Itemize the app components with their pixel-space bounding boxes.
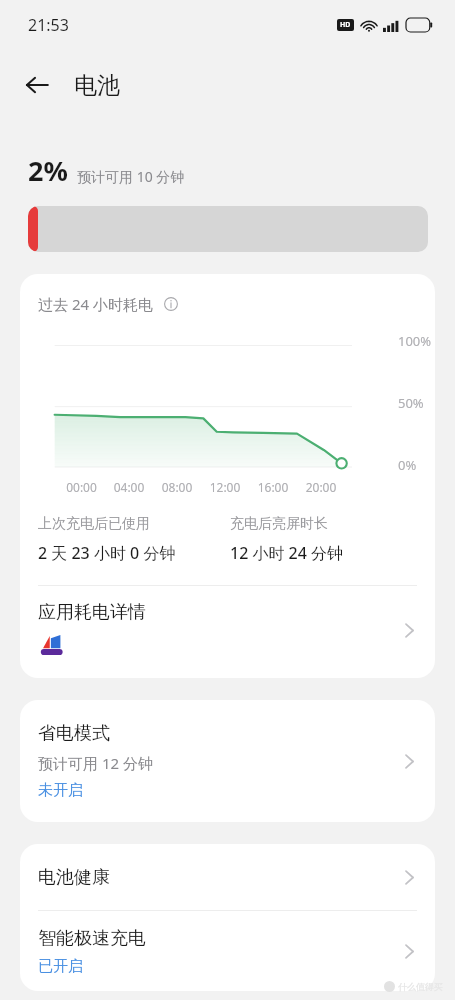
staticText: 100% [398,332,432,350]
button[interactable]: Info [160,293,182,315]
staticText: 0% [398,456,417,474]
staticText: 应用耗电详情 [38,601,146,624]
button[interactable]: Back [14,62,60,108]
staticText: 2 天 23 小时 0 分钟 [38,542,176,564]
staticText: HD [340,20,351,30]
staticText: 50% [398,394,424,412]
staticText: 充电后亮屏时长 [230,515,328,533]
staticText: 预计可用 12 分钟 [38,753,153,773]
staticText: 电池 [74,71,120,100]
staticText: 上次充电后已使用 [38,515,150,533]
staticText: 20:00 [297,479,345,495]
staticText: 省电模式 [38,722,110,745]
button[interactable]: 智能极速充电 [20,911,435,991]
staticText: 08:00 [153,479,201,495]
button[interactable]: 电池健康 [20,844,435,910]
staticText: 智能极速充电 [38,927,146,950]
staticText: 未开启 [38,781,83,800]
button[interactable]: 省电模式 [20,700,435,822]
staticText: 过去 24 小时耗电 [38,294,153,314]
staticText: 预计可用 10 分钟 [77,167,185,186]
staticText: 12 小时 24 分钟 [230,542,344,564]
staticText: 电池健康 [38,866,110,889]
button[interactable]: 应用耗电详情 [20,586,435,674]
staticText: 21:53 [28,14,69,36]
staticText: 16:00 [249,479,297,495]
staticText: 什么值得买 [398,981,443,992]
staticText: 2% [28,152,68,189]
staticText: 00:00 [58,479,105,495]
staticText: 12:00 [201,479,249,495]
staticText: 04:00 [105,479,153,495]
staticText: 已开启 [38,957,83,976]
